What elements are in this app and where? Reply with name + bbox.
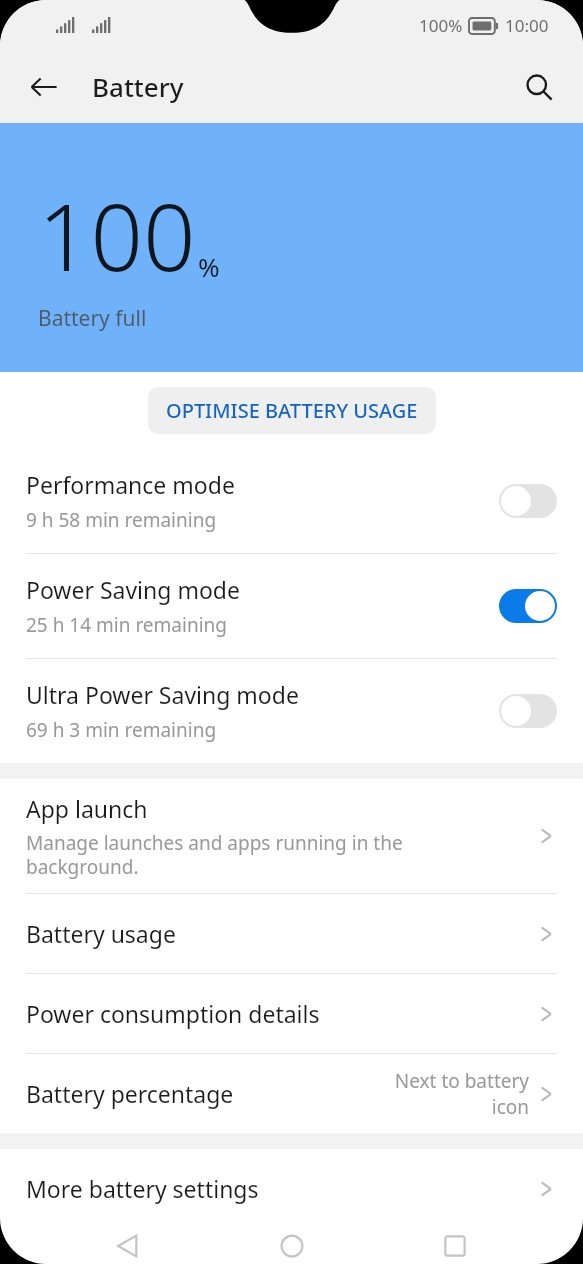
button[interactable]: Power Saving mode	[0, 554, 583, 659]
staticText: OPTIMISE BATTERY USAGE	[166, 397, 418, 424]
button[interactable]: Home	[257, 1228, 327, 1264]
button[interactable]: Ultra Power Saving mode	[0, 659, 583, 763]
staticText: Power consumption details	[26, 998, 320, 1029]
staticText: 100	[38, 173, 196, 298]
button[interactable]: Search	[509, 57, 569, 117]
staticText: Battery usage	[26, 918, 176, 949]
button[interactable]: Battery usage	[0, 894, 583, 974]
button[interactable]: Power consumption details	[0, 974, 583, 1054]
staticText: App launch	[26, 793, 148, 824]
button[interactable]: Battery percentage	[0, 1054, 583, 1133]
staticText: %	[198, 249, 220, 284]
button[interactable]: Back	[14, 57, 74, 117]
button[interactable]: Back	[93, 1228, 163, 1264]
staticText: 100%	[419, 14, 463, 37]
staticText: Battery full	[38, 304, 147, 333]
button[interactable]: App launch	[0, 779, 583, 894]
button[interactable]: Performance mode	[0, 449, 583, 554]
staticText: Ultra Power Saving mode	[26, 679, 299, 710]
staticText: Battery percentage	[26, 1078, 234, 1109]
button[interactable]: Recents	[420, 1228, 490, 1264]
staticText: 9 h 58 min remaining	[26, 507, 217, 533]
button[interactable]: More battery settings	[0, 1149, 583, 1228]
staticText: Manage launches and apps running in the …	[26, 830, 403, 879]
staticText: Power Saving mode	[26, 574, 240, 605]
staticText: Battery	[92, 69, 184, 104]
staticText: Performance mode	[26, 469, 235, 500]
staticText: 10:00	[505, 14, 549, 37]
staticText: More battery settings	[26, 1173, 259, 1204]
staticText: Next to battery icon	[394, 1068, 529, 1119]
button[interactable]: OPTIMISE BATTERY USAGE	[148, 387, 436, 434]
staticText: 25 h 14 min remaining	[26, 612, 227, 638]
staticText: 69 h 3 min remaining	[26, 717, 217, 743]
